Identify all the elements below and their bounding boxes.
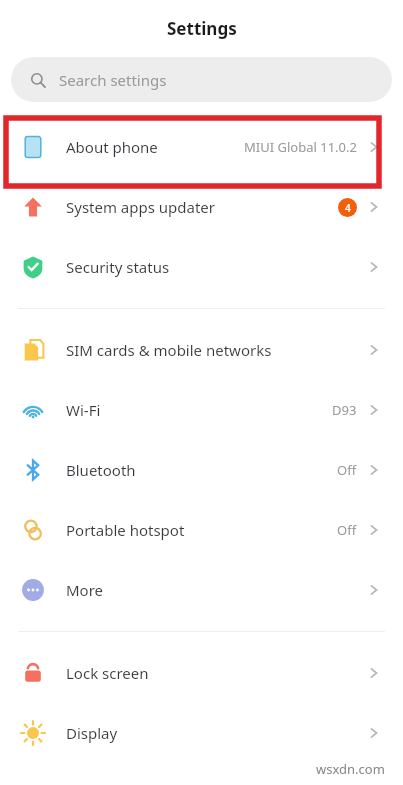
staticText: MIUI Global 11.0.2 (244, 138, 357, 156)
staticText: Search settings (59, 70, 167, 90)
staticText: Off (337, 461, 357, 479)
other: Display (20, 720, 46, 746)
button[interactable]: More (0, 560, 403, 620)
button[interactable]: Security status (0, 237, 403, 297)
staticText: Off (337, 521, 357, 539)
staticText: Lock screen (66, 663, 149, 683)
other: More (20, 577, 46, 603)
other: Wi-Fi (20, 397, 46, 423)
staticText: About phone (66, 137, 158, 157)
button[interactable]: Lock screen (0, 643, 403, 703)
other: About phone (20, 134, 46, 160)
button[interactable]: About phone (0, 117, 403, 177)
button[interactable]: Display (0, 703, 403, 763)
staticText: wsxdn.com (316, 760, 385, 778)
button[interactable]: Bluetooth (0, 440, 403, 500)
staticText: Portable hotspot (66, 520, 185, 540)
other: System apps updater (20, 194, 46, 220)
button[interactable]: SIM cards (0, 320, 403, 380)
button[interactable]: System apps updater (0, 177, 403, 237)
staticText: Settings (167, 17, 237, 40)
other: SIM cards (20, 337, 46, 363)
other: Bluetooth (20, 457, 46, 483)
button[interactable]: Wi-Fi (0, 380, 403, 440)
staticText: Security status (66, 257, 170, 277)
staticText: SIM cards & mobile networks (66, 340, 272, 360)
staticText: Bluetooth (66, 460, 136, 480)
staticText: 4 (345, 201, 351, 215)
staticText: Display (66, 723, 118, 743)
staticText: More (66, 580, 104, 600)
button[interactable]: Portable hotspot (0, 500, 403, 560)
other: Lock screen (20, 660, 46, 686)
staticText: D93 (332, 401, 357, 419)
other: Security status (20, 254, 46, 280)
staticText: Wi-Fi (66, 400, 101, 420)
button[interactable]: Search settings (11, 57, 392, 102)
other: Portable hotspot (20, 517, 46, 543)
staticText: System apps updater (66, 197, 216, 217)
